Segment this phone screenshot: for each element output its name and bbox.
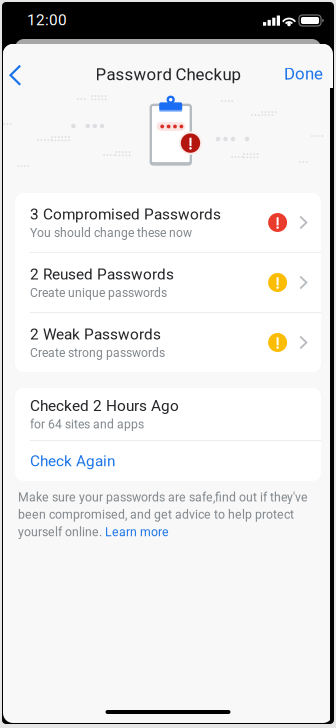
staticText: for 64 sites and apps [30, 417, 144, 431]
button[interactable]: Back [3, 54, 33, 96]
button[interactable]: Learn more [105, 525, 169, 539]
staticText: Create unique passwords [30, 286, 167, 300]
button[interactable]: Check Again [15, 441, 321, 481]
staticText: 2 Weak Passwords [30, 325, 161, 343]
button[interactable]: 2 Weak Passwords [15, 313, 321, 372]
staticText: Check Again [30, 452, 115, 470]
staticText: been compromised, and get advice to help… [18, 507, 294, 522]
button[interactable]: 3 Compromised Passwords [15, 193, 321, 252]
staticText: Make sure your passwords are safe,find o… [18, 490, 308, 504]
staticText: Done [284, 64, 323, 84]
staticText: 12:00 [27, 11, 67, 29]
staticText: yourself online. [18, 525, 105, 539]
staticText: 3 Compromised Passwords [30, 205, 221, 223]
staticText: Checked 2 Hours Ago [30, 397, 179, 415]
staticText: Create strong passwords [30, 346, 165, 360]
staticText: 2 Reused Passwords [30, 265, 174, 283]
button[interactable]: 2 Reused Passwords [15, 253, 321, 312]
staticText: You should change these now [30, 226, 192, 240]
button[interactable]: Done [275, 54, 332, 94]
staticText: Password Checkup [95, 65, 240, 84]
staticText: Learn more [105, 525, 169, 539]
